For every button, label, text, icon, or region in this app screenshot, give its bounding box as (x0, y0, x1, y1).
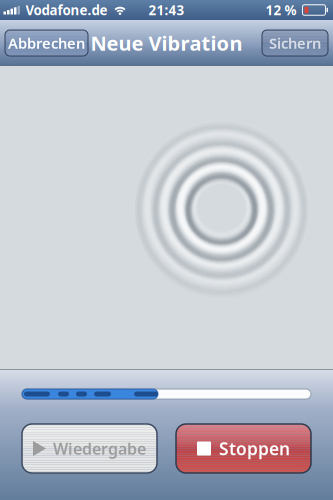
staticText: 21:43 (148, 1, 184, 19)
staticText: Sichern (269, 33, 321, 53)
staticText: Abbrechen (8, 33, 85, 53)
staticText: Wiedergabe (53, 438, 146, 459)
button[interactable]: Stoppen (176, 424, 311, 473)
button[interactable]: Wiedergabe (22, 424, 157, 473)
staticText: Stoppen (219, 437, 290, 460)
button[interactable]: Sichern (262, 30, 328, 56)
staticText: 12 % (265, 1, 296, 19)
staticText: Vodafone.de (25, 1, 107, 19)
staticText: Neue Vibration (90, 30, 242, 56)
button[interactable]: Abbrechen (5, 30, 88, 56)
